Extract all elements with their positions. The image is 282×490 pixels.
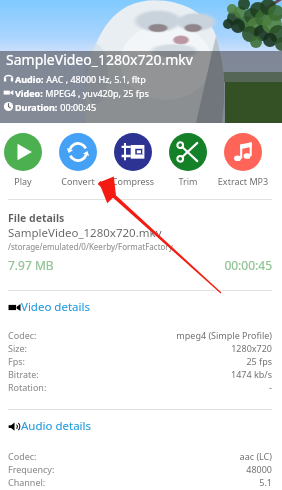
staticText: E bbox=[253, 175, 282, 187]
staticText: /storage/emulated/0/Keerby/FormatFactory bbox=[8, 241, 173, 252]
staticText: Video: bbox=[15, 87, 43, 99]
button[interactable]: Extract MP3 bbox=[224, 133, 262, 171]
staticText: Fps: bbox=[8, 355, 25, 367]
staticText: Channel: bbox=[8, 476, 46, 488]
staticText: Rotation: bbox=[8, 381, 47, 393]
staticText: Codec: bbox=[8, 450, 37, 462]
staticText: 5.1 bbox=[122, 476, 272, 488]
staticText: 1280x720 bbox=[122, 342, 272, 354]
staticText: Extract MP3 bbox=[198, 175, 282, 187]
staticText: 00:00:45 bbox=[172, 257, 272, 273]
staticText: 25 fps bbox=[122, 355, 272, 367]
staticText: Audio details bbox=[21, 418, 92, 434]
staticText: 48000 bbox=[122, 463, 272, 475]
staticText: Trim bbox=[143, 175, 233, 187]
staticText: Size: bbox=[8, 342, 27, 354]
staticText: 00:00:45 bbox=[58, 101, 97, 113]
staticText: Duration: bbox=[15, 101, 58, 113]
staticText: Play bbox=[0, 175, 68, 187]
staticText: SampleVideo_1280x720.mkv bbox=[6, 50, 193, 69]
staticText: 1474 kb/s bbox=[122, 368, 272, 380]
staticText: File details bbox=[8, 211, 65, 225]
staticText: SampleVideo_1280x720.mkv bbox=[8, 225, 162, 241]
staticText: MPEG4 , yuv420p, 25 fps bbox=[43, 87, 149, 99]
staticText: mpeg4 (Simple Profile) bbox=[122, 329, 272, 341]
staticText: Audio: bbox=[15, 73, 44, 85]
staticText: Convert bbox=[33, 175, 123, 187]
button[interactable]: Trim bbox=[169, 133, 207, 171]
staticText: Video details bbox=[21, 299, 90, 315]
staticText: Codec: bbox=[8, 329, 37, 341]
staticText: - bbox=[122, 381, 272, 393]
staticText: 7.97 MB bbox=[8, 257, 54, 273]
staticText: Compress bbox=[88, 175, 178, 187]
staticText: Bitrate: bbox=[8, 368, 39, 380]
staticText: Frequency: bbox=[8, 463, 55, 475]
staticText: aac (LC) bbox=[122, 450, 272, 462]
button[interactable]: Play bbox=[4, 133, 42, 171]
staticText: AAC , 48000 Hz, 5.1, fltp bbox=[44, 73, 146, 85]
button[interactable]: Convert bbox=[59, 133, 97, 171]
button[interactable]: Compress bbox=[114, 133, 152, 171]
